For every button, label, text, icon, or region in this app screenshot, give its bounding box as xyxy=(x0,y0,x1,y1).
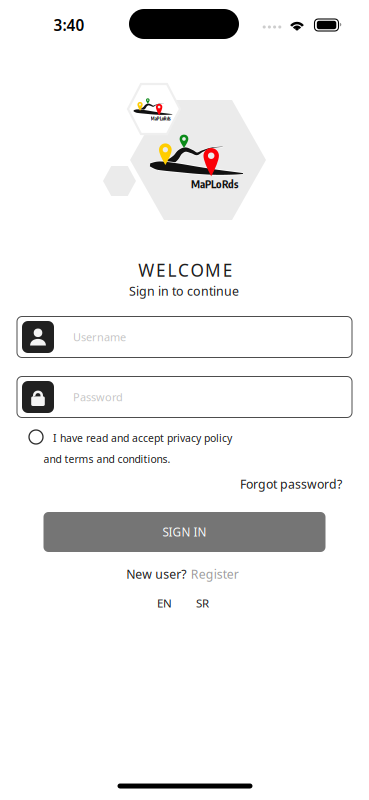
staticText: WELCOME xyxy=(138,258,233,282)
button[interactable]: EN xyxy=(157,595,172,611)
staticText: 3:40 xyxy=(53,15,84,35)
staticText: Password xyxy=(73,390,123,404)
button[interactable]: I have read and accept privacy policy xyxy=(29,430,43,444)
staticText: EN xyxy=(157,595,172,611)
button[interactable]: Username xyxy=(17,316,352,357)
button[interactable]: SR xyxy=(196,595,209,611)
staticText: Sign in to continue xyxy=(129,283,239,299)
staticText: SIGN IN xyxy=(162,524,206,540)
staticText: MaPLoRds xyxy=(191,177,238,191)
staticText: I have read and accept privacy policy xyxy=(53,431,232,445)
staticText: Forgot password? xyxy=(240,476,342,492)
staticText: SR xyxy=(196,595,209,611)
button[interactable]: Register xyxy=(191,566,239,582)
staticText: and terms and conditions. xyxy=(43,452,170,466)
button[interactable]: SIGN IN xyxy=(43,512,325,552)
staticText: MaPLoRds xyxy=(151,116,171,121)
button[interactable]: Password xyxy=(17,376,352,417)
staticText: Username xyxy=(73,330,126,344)
staticText: Register xyxy=(191,566,239,582)
staticText: New user? xyxy=(126,566,186,582)
button[interactable]: Forgot password? xyxy=(240,476,342,492)
